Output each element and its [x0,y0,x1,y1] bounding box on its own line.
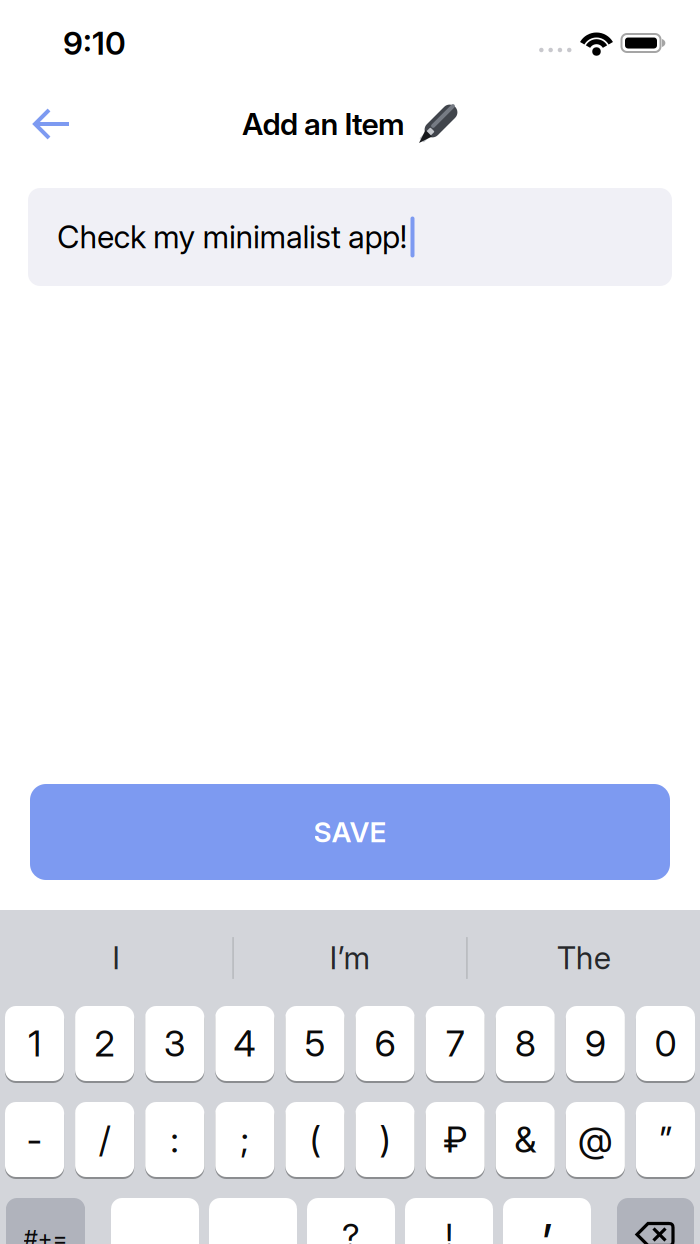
staticText: - [27,1118,43,1161]
button[interactable]: 7 [426,1006,485,1081]
button[interactable]: & [496,1102,555,1177]
button[interactable]: ” [636,1102,695,1177]
staticText: ? [342,1215,360,1244]
staticText: 3 [164,1022,186,1065]
button[interactable]: , [209,1198,297,1244]
staticText: 2 [94,1022,115,1065]
button[interactable]: ; [215,1102,274,1177]
button[interactable]: ( [285,1102,344,1177]
staticText: ” [659,1118,672,1161]
button[interactable]: SAVE [0,784,700,880]
button[interactable]: 4 [215,1006,274,1081]
button[interactable]: I’m [234,910,466,1006]
staticText: ! [445,1215,453,1244]
staticText: : [170,1118,179,1161]
staticText: @ [578,1118,613,1161]
button[interactable]: 2 [75,1006,134,1081]
button[interactable]: ! [405,1198,493,1244]
button[interactable]: 9 [566,1006,625,1081]
button[interactable]: 1 [5,1006,64,1081]
staticText: SAVE [313,815,386,849]
staticText: ₽ [443,1118,467,1161]
staticText: The [557,939,611,977]
button[interactable]: Delete [617,1198,694,1244]
staticText: I’m [329,939,370,977]
staticText: #+= [23,1225,67,1244]
staticText: ’ [540,1212,553,1244]
staticText: 5 [304,1022,325,1065]
staticText: ( [309,1118,320,1161]
button[interactable]: I [0,910,232,1006]
button[interactable]: 0 [636,1006,695,1081]
staticText: / [99,1118,111,1161]
staticText: Check my minimalist app! [57,218,407,256]
button[interactable]: 8 [496,1006,555,1081]
button[interactable]: 6 [355,1006,415,1081]
button[interactable]: The [468,910,700,1006]
button[interactable]: Back [0,104,70,144]
staticText: 9 [585,1022,606,1065]
button[interactable]: 5 [285,1006,344,1081]
button[interactable]: . [111,1198,199,1244]
staticText: 8 [515,1022,536,1065]
button[interactable]: ) [355,1102,415,1177]
button[interactable]: - [5,1102,64,1177]
staticText: ) [380,1118,391,1161]
button[interactable]: ? [307,1198,395,1244]
button[interactable]: Symbols [6,1198,85,1244]
button[interactable]: @ [566,1102,625,1177]
button[interactable]: 3 [145,1006,204,1081]
staticText: 7 [446,1022,465,1065]
button[interactable]: / [75,1102,134,1177]
staticText: Add an Item [242,106,405,142]
staticText: 6 [375,1022,396,1065]
staticText: & [514,1118,536,1161]
staticText: I [112,939,120,977]
staticText: ; [240,1118,249,1161]
button[interactable]: : [145,1102,204,1177]
button[interactable]: ₽ [426,1102,485,1177]
staticText: 4 [233,1022,256,1065]
staticText: 1 [28,1022,41,1065]
staticText: 0 [654,1022,676,1065]
staticText: 9:10 [63,24,126,62]
button[interactable]: ’ [503,1198,591,1244]
button[interactable]: Item text [0,188,700,286]
